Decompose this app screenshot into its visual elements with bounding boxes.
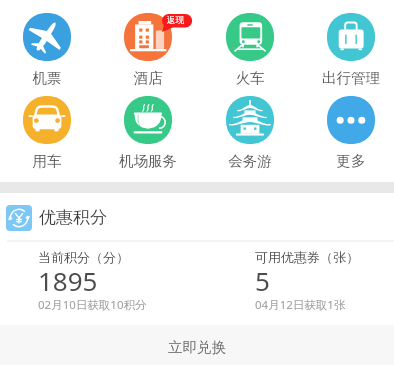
button[interactable]: 更多: [315, 92, 387, 170]
staticText: 04月12日获取1张: [255, 297, 346, 313]
button[interactable]: 会务游: [214, 92, 286, 170]
staticText: 返现: [167, 15, 184, 26]
staticText: 机票: [11, 69, 83, 87]
staticText: 优惠积分: [39, 207, 107, 228]
button[interactable]: 火车: [214, 9, 286, 87]
staticText: 更多: [315, 152, 387, 170]
staticText: 1895: [38, 263, 98, 298]
button[interactable]: 返现: [112, 9, 184, 87]
staticText: 立即兑换: [168, 338, 226, 356]
button[interactable]: 用车: [11, 92, 83, 170]
staticText: 酒店: [112, 69, 184, 87]
staticText: 出行管理: [315, 69, 387, 87]
staticText: 机场服务: [112, 152, 184, 170]
button[interactable]: 机票: [11, 9, 83, 87]
staticText: 火车: [214, 69, 286, 87]
staticText: 会务游: [214, 152, 286, 170]
staticText: 用车: [11, 152, 83, 170]
staticText: 可用优惠券（张）: [255, 249, 359, 265]
button[interactable]: 优惠积分: [0, 193, 394, 242]
staticText: 当前积分（分）: [38, 249, 129, 265]
button[interactable]: 机场服务: [112, 92, 184, 170]
staticText: 5: [255, 263, 270, 298]
button[interactable]: 出行管理: [315, 9, 387, 87]
button[interactable]: 立即兑换: [0, 325, 394, 365]
staticText: 02月10日获取10积分: [38, 297, 147, 313]
